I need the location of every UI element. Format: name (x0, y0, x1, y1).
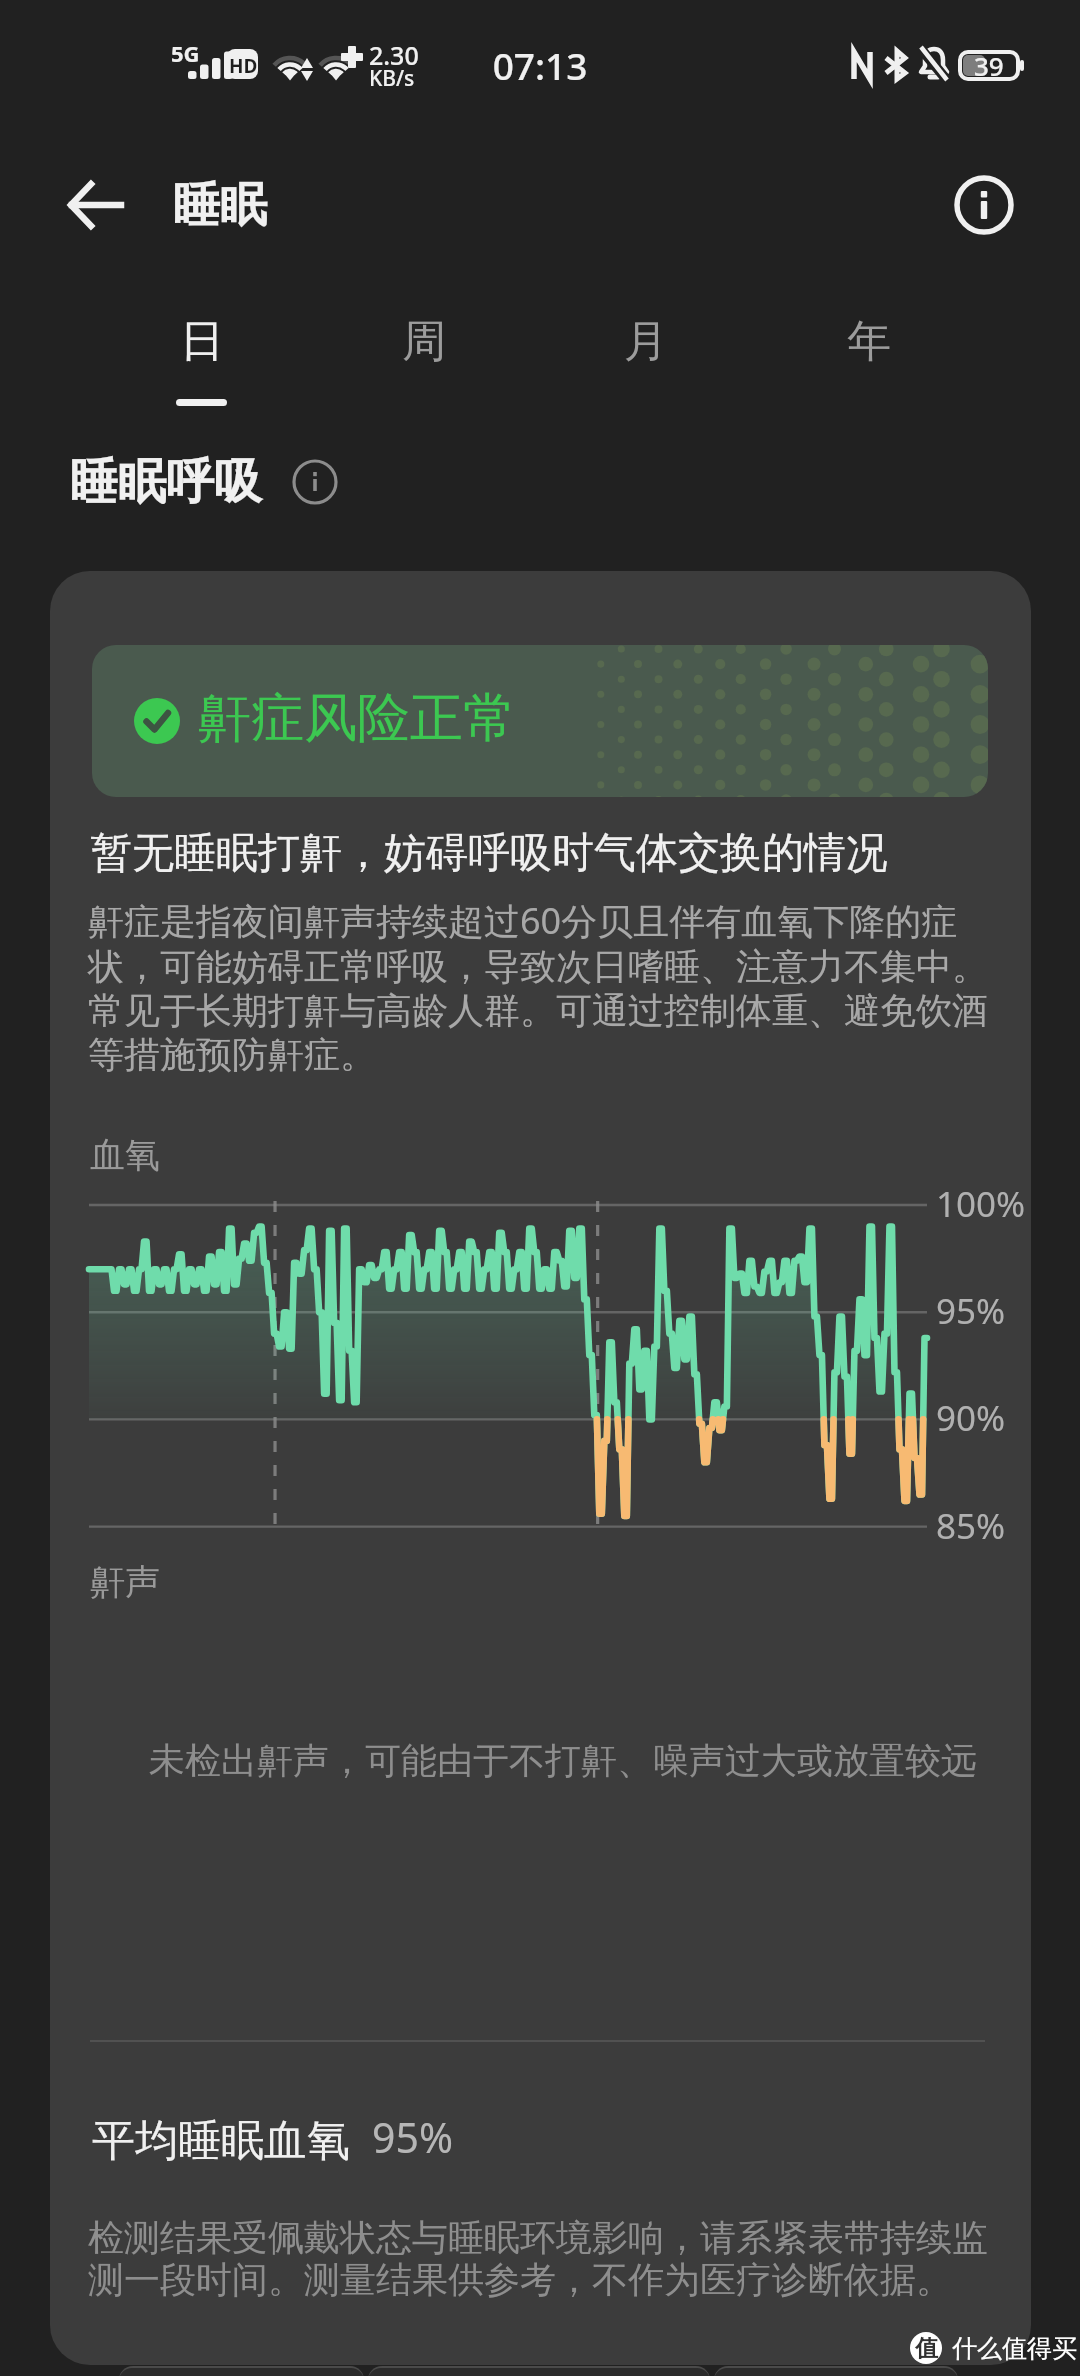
button[interactable]: Sleep breathing info (286, 453, 344, 511)
staticText: 鼾症风险正常 (198, 685, 516, 752)
button[interactable]: Back (48, 130, 144, 280)
staticText: 100% (936, 1180, 1026, 1228)
staticText: KB/s (369, 64, 415, 93)
staticText: 95% (372, 2109, 453, 2165)
staticText: 日 (180, 314, 224, 369)
button[interactable]: 日 (112, 288, 292, 408)
staticText: 值 (915, 2334, 938, 2363)
staticText: 2.30 (369, 38, 419, 72)
staticText: 年 (847, 314, 891, 369)
staticText: 平均睡眠血氧 (92, 2114, 350, 2168)
staticText: 85% (936, 1502, 1006, 1550)
staticText: 90% (936, 1394, 1006, 1442)
button[interactable]: 周 (334, 288, 514, 408)
staticText: 鼾声 (90, 1560, 160, 1604)
staticText: 什么值得买 (952, 2333, 1077, 2364)
staticText: 暂无睡眠打鼾，妨碍呼吸时气体交换的情况 (90, 827, 888, 880)
staticText: 95% (936, 1287, 1006, 1335)
staticText: 睡眠呼吸 (70, 452, 262, 512)
staticText: 周 (402, 314, 446, 369)
staticText: 检测结果受佩戴状态与睡眠环境影响，请系紧表带持续监测一段时间。测量结果供参考，不… (88, 2215, 1018, 2302)
staticText: 睡眠 (173, 176, 267, 235)
staticText: 未检出鼾声，可能由于不打鼾、噪声过大或放置较远 (149, 1738, 977, 1783)
button[interactable]: Info (939, 160, 1029, 250)
staticText: 07:13 (0, 40, 1080, 90)
staticText: 月 (624, 314, 668, 369)
staticText: 血氧 (90, 1133, 160, 1177)
staticText: 39 (974, 48, 1004, 83)
staticText: HD (229, 53, 258, 79)
staticText: 5G (171, 38, 200, 68)
button[interactable]: 年 (779, 288, 959, 408)
staticText: 鼾症是指夜间鼾声持续超过60分贝且伴有血氧下降的症状，可能妨碍正常呼吸，导致次日… (88, 896, 1000, 1078)
button[interactable]: 月 (556, 288, 736, 408)
